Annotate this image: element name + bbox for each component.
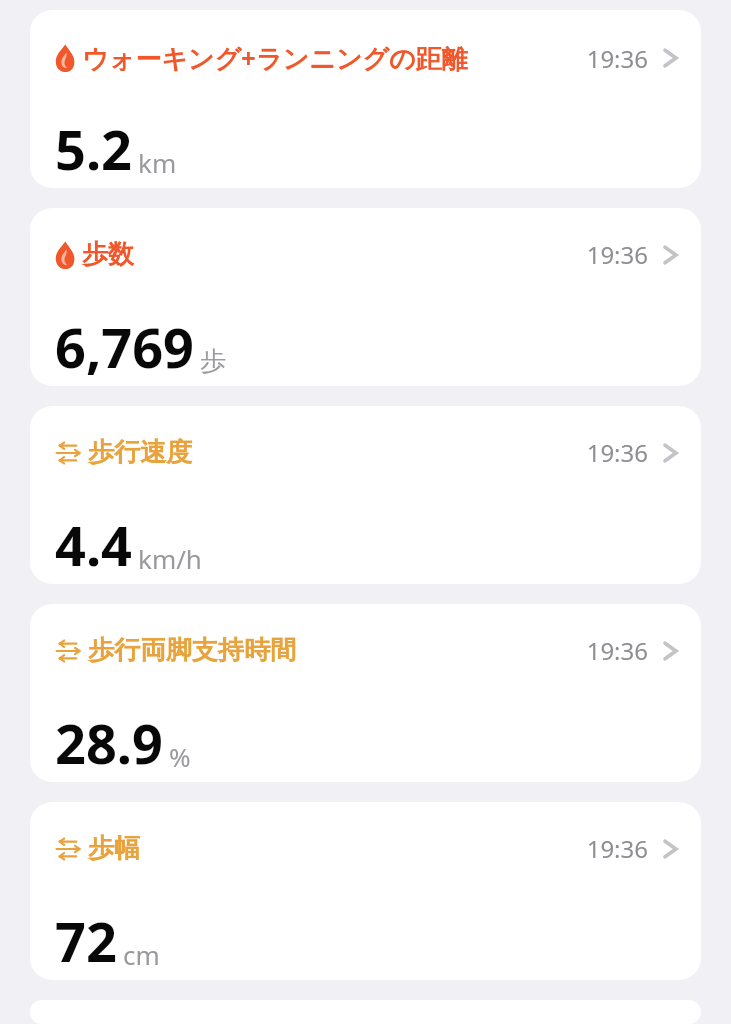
other: Open details (662, 240, 679, 270)
other: Gait (55, 440, 81, 466)
staticText: 5.2 (55, 112, 132, 186)
staticText: 歩数 (82, 238, 134, 271)
staticText: % (169, 739, 191, 774)
staticText: 歩行速度 (88, 436, 192, 469)
other: Open details (662, 438, 679, 468)
staticText: 19:36 (586, 436, 648, 469)
staticText: 歩幅 (88, 832, 140, 865)
staticText: km (138, 145, 177, 180)
other: Gait (55, 836, 81, 862)
button[interactable]: Activity (30, 208, 701, 386)
button[interactable]: Gait (30, 604, 701, 782)
staticText: 19:36 (586, 238, 648, 271)
staticText: ウォーキング+ランニングの距離 (82, 40, 468, 76)
staticText: 19:36 (586, 42, 648, 75)
staticText: 28.9 (55, 706, 163, 780)
other: Activity (55, 44, 75, 72)
staticText: km/h (138, 541, 202, 576)
staticText: 19:36 (586, 832, 648, 865)
other: Activity (55, 241, 75, 269)
other: Open details (662, 834, 679, 864)
staticText: 72 (55, 904, 117, 978)
button[interactable]: Gait (30, 802, 701, 980)
button[interactable]: Activity (30, 10, 701, 188)
staticText: cm (123, 937, 160, 972)
other: Open details (662, 636, 679, 666)
staticText: 歩 (200, 345, 226, 378)
staticText: 4.4 (55, 508, 132, 582)
other: Open details (662, 43, 679, 73)
staticText: 19:36 (586, 634, 648, 667)
other: Gait (55, 638, 81, 664)
staticText: 6,769 (55, 310, 194, 384)
staticText: 歩行両脚支持時間 (88, 634, 296, 667)
button[interactable]: Gait (30, 406, 701, 584)
